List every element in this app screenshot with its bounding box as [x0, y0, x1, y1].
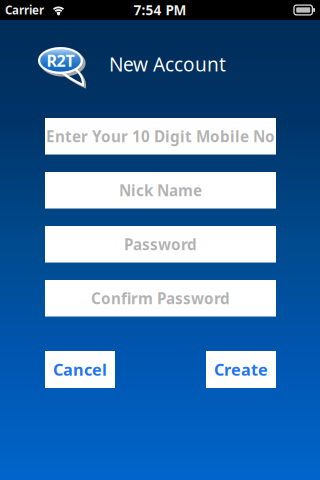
staticText: Carrier — [5, 2, 44, 18]
button[interactable]: Confirm Password — [45, 280, 276, 316]
staticText: Nick Name — [119, 180, 202, 201]
button[interactable]: Create — [206, 351, 276, 388]
button[interactable]: Cancel — [45, 351, 115, 388]
staticText: Enter Your 10 Digit Mobile No — [46, 126, 275, 147]
button[interactable]: Enter Your 10 Digit Mobile No — [45, 118, 276, 154]
button[interactable]: Password — [45, 226, 276, 262]
staticText: New Account — [109, 51, 226, 77]
staticText: Cancel — [53, 358, 107, 381]
staticText: Create — [214, 358, 268, 381]
staticText: Password — [124, 234, 197, 255]
button[interactable]: New Account — [109, 51, 226, 77]
staticText: Confirm Password — [91, 288, 230, 309]
button[interactable]: Nick Name — [45, 172, 276, 208]
staticText: 7:54 PM — [133, 1, 186, 19]
staticText: R2T — [46, 50, 74, 71]
